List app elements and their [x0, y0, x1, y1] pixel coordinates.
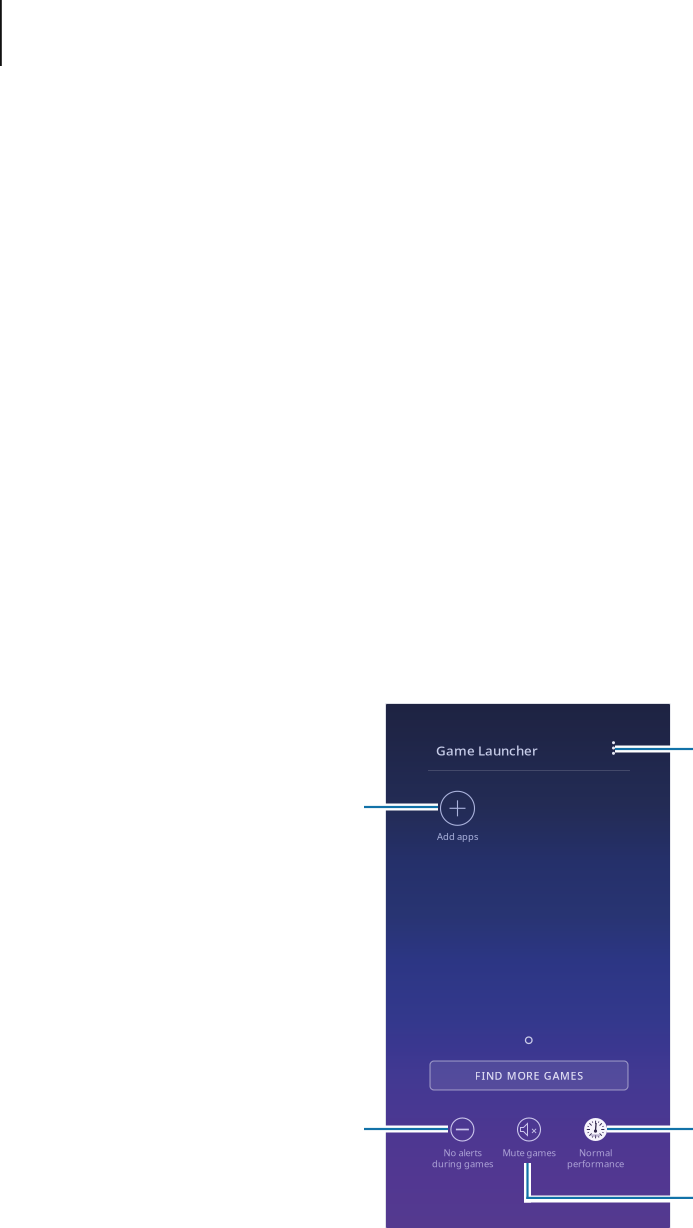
button[interactable]: More options	[599, 733, 627, 763]
button[interactable]: FIND MORE GAMES	[430, 1061, 628, 1090]
staticText: Add apps	[437, 830, 478, 843]
staticText: Normal	[579, 1146, 612, 1159]
staticText: Mute games	[502, 1146, 555, 1159]
staticText: Game Launcher	[436, 741, 538, 759]
staticText: performance	[567, 1157, 624, 1170]
button[interactable]: ×	[496, 1116, 562, 1178]
staticText: No alerts	[443, 1146, 481, 1159]
staticText: ×	[531, 1123, 537, 1138]
staticText: FIND MORE GAMES	[475, 1068, 583, 1083]
button[interactable]: Normal	[562, 1116, 629, 1178]
button[interactable]: Add apps	[421, 789, 493, 845]
staticText: during games	[432, 1157, 493, 1170]
button[interactable]: No alerts	[429, 1116, 496, 1178]
